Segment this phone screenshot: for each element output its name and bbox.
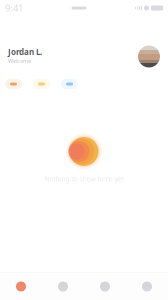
button[interactable]: Home: [0, 281, 42, 291]
staticText: 9:41: [5, 2, 23, 14]
button[interactable]: Category: [33, 79, 50, 89]
button[interactable]: Activity: [84, 281, 126, 291]
button[interactable]: Category: [61, 79, 78, 89]
staticText: Nothing to show here yet: [44, 174, 123, 184]
button[interactable]: Search: [42, 281, 84, 291]
button[interactable]: Profile: [126, 281, 168, 291]
staticText: Jordan L.: [8, 46, 42, 57]
button[interactable]: Category: [5, 79, 22, 89]
staticText: Welcome: [8, 57, 31, 65]
button[interactable]: Profile: [138, 45, 160, 68]
